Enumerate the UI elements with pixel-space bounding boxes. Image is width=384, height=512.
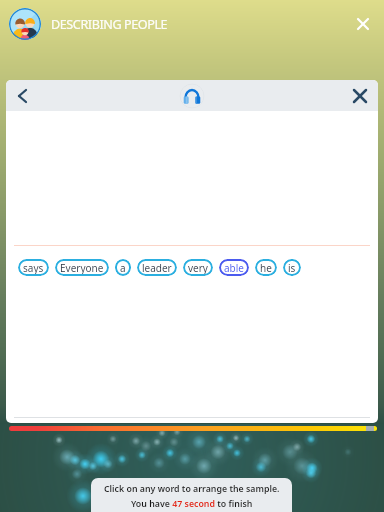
button[interactable]: says	[23, 259, 44, 276]
staticText: says	[23, 261, 44, 275]
button[interactable]: Everyone	[60, 259, 104, 276]
staticText: very	[188, 261, 208, 275]
staticText: DESCRIBING PEOPLE	[51, 16, 168, 33]
staticText: Click on any word to arrange the sample.	[104, 483, 280, 495]
staticText: he	[260, 261, 272, 275]
button[interactable]: leader	[142, 259, 172, 276]
staticText: Everyone	[60, 261, 104, 275]
staticText: leader	[142, 261, 172, 275]
staticText: able	[224, 261, 244, 275]
button[interactable]: able	[224, 259, 244, 276]
button[interactable]: he	[260, 259, 272, 276]
button[interactable]: Close lesson	[348, 84, 372, 108]
button[interactable]: Lesson avatar	[9, 8, 41, 40]
button[interactable]: Back	[9, 83, 35, 109]
button[interactable]: Click on any word to arrange the sample.	[91, 478, 292, 512]
staticText: a	[120, 261, 126, 275]
button[interactable]: a	[120, 259, 126, 276]
button[interactable]: is	[288, 259, 296, 276]
button[interactable]: Close	[349, 10, 377, 38]
staticText: is	[288, 261, 296, 275]
button[interactable]: very	[188, 259, 208, 276]
staticText: You have 47 second to finish	[131, 498, 253, 510]
button[interactable]: Listen	[178, 82, 206, 110]
